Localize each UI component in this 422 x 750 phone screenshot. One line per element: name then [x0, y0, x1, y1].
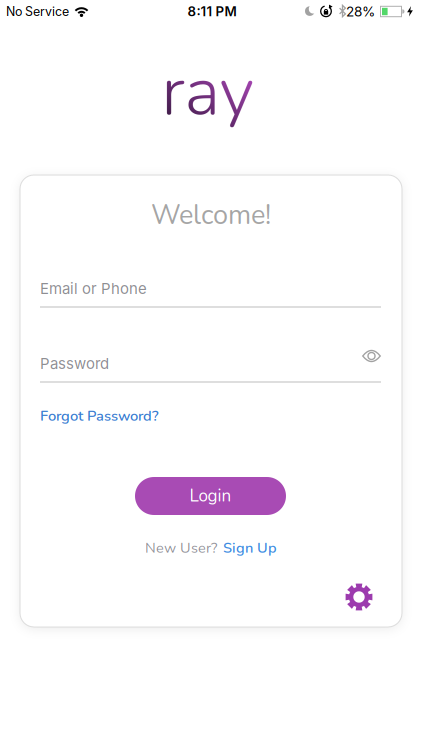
staticText: Forgot Password?	[40, 406, 159, 426]
button[interactable]: Password	[40, 354, 381, 382]
staticText: Email or Phone	[40, 279, 147, 298]
button[interactable]: Show password	[359, 344, 383, 368]
staticText: 8:11 PM	[187, 3, 236, 19]
staticText: Login	[189, 484, 231, 508]
button[interactable]: Email or Phone	[40, 279, 381, 307]
button[interactable]: Forgot Password?	[40, 406, 159, 426]
staticText: Welcome!	[151, 196, 271, 233]
button[interactable]: Settings	[344, 582, 374, 612]
button[interactable]: Sign Up	[223, 538, 277, 558]
staticText: New User?	[145, 538, 217, 558]
staticText: Password	[40, 354, 109, 373]
staticText: No Service	[6, 4, 69, 19]
button[interactable]: Login	[135, 477, 286, 515]
staticText: Sign Up	[223, 538, 277, 558]
staticText: 28%	[346, 3, 375, 20]
